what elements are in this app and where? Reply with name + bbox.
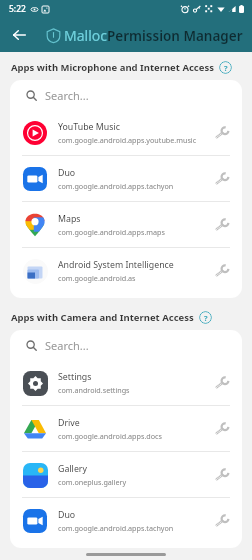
staticText: com.google.android.as bbox=[58, 273, 136, 283]
staticText: com.google.android.apps.youtube.music bbox=[58, 135, 197, 145]
staticText: Malloc bbox=[64, 26, 107, 45]
button[interactable]: Configure Maps bbox=[210, 214, 232, 236]
staticText: Gallery bbox=[58, 463, 87, 475]
staticText: Permission Manager bbox=[107, 27, 243, 45]
button[interactable]: Search... bbox=[10, 330, 242, 360]
staticText: Search... bbox=[45, 88, 89, 103]
button[interactable]: Configure Android System Intelligence bbox=[210, 260, 232, 282]
button[interactable]: Configure Drive bbox=[210, 418, 232, 440]
staticText: com.google.android.apps.docs bbox=[58, 431, 162, 441]
staticText: Settings bbox=[58, 371, 92, 383]
button[interactable]: Android System Intelligence bbox=[10, 248, 242, 293]
staticText: Apps with Microphone and Internet Access bbox=[11, 61, 214, 74]
button[interactable]: Configure Gallery bbox=[210, 464, 232, 486]
staticText: Apps with Camera and Internet Access bbox=[11, 311, 194, 324]
button[interactable]: YouTube Music bbox=[10, 110, 242, 155]
staticText: com.oneplus.gallery bbox=[58, 477, 127, 487]
staticText: Drive bbox=[58, 417, 80, 429]
staticText: 5:22 bbox=[9, 3, 26, 15]
staticText: Maps bbox=[58, 213, 81, 225]
button[interactable]: Help bbox=[199, 311, 212, 324]
staticText: com.google.android.apps.tachyon bbox=[58, 523, 174, 533]
button[interactable]: Back bbox=[5, 21, 33, 49]
button[interactable]: Maps bbox=[10, 202, 242, 247]
button[interactable]: Help bbox=[219, 61, 232, 74]
button[interactable]: Duo bbox=[10, 156, 242, 201]
staticText: Duo bbox=[58, 167, 76, 179]
staticText: Duo bbox=[58, 509, 76, 521]
button[interactable]: Gallery bbox=[10, 452, 242, 497]
button[interactable]: Configure Settings bbox=[210, 372, 232, 394]
button[interactable]: Settings bbox=[10, 360, 242, 405]
staticText: com.android.settings bbox=[58, 385, 130, 395]
staticText: ? bbox=[204, 313, 208, 323]
staticText: com.google.android.apps.maps bbox=[58, 227, 165, 237]
button[interactable]: Duo bbox=[10, 498, 242, 543]
button[interactable]: Search... bbox=[10, 80, 242, 110]
staticText: Android System Intelligence bbox=[58, 259, 174, 271]
staticText: Search... bbox=[45, 338, 89, 353]
button[interactable]: Configure Duo bbox=[210, 510, 232, 532]
staticText: ? bbox=[224, 63, 228, 73]
button[interactable]: Drive bbox=[10, 406, 242, 451]
button[interactable]: Configure YouTube Music bbox=[210, 122, 232, 144]
staticText: com.google.android.apps.tachyon bbox=[58, 181, 174, 191]
staticText: YouTube Music bbox=[58, 121, 120, 133]
button[interactable]: Configure Duo bbox=[210, 168, 232, 190]
